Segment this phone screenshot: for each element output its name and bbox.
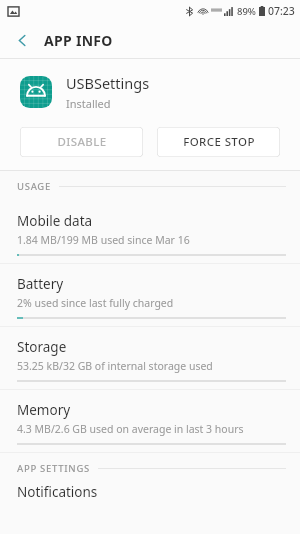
- staticText: APP INFO: [44, 31, 113, 50]
- button[interactable]: Mobile data: [0, 201, 300, 263]
- staticText: FORCE STOP: [183, 134, 255, 150]
- button[interactable]: Storage: [0, 327, 300, 389]
- button[interactable]: Battery: [0, 264, 300, 326]
- staticText: USBSettings: [66, 73, 150, 93]
- staticText: USAGE: [17, 180, 51, 193]
- staticText: 07:23: [268, 4, 295, 18]
- button[interactable]: Memory: [0, 390, 300, 452]
- staticText: DISABLE: [57, 134, 107, 150]
- staticText: Mobile data: [17, 212, 93, 230]
- button[interactable]: FORCE STOP: [157, 127, 280, 157]
- staticText: Notifications: [17, 483, 98, 501]
- staticText: 89%: [237, 5, 256, 18]
- staticText: Memory: [17, 401, 71, 419]
- staticText: 1.84 MB/199 MB used since Mar 16: [17, 233, 190, 247]
- staticText: 53.25 kB/32 GB of internal storage used: [17, 359, 213, 373]
- button[interactable]: DISABLE: [20, 127, 143, 157]
- staticText: 2% used since last fully charged: [17, 296, 174, 310]
- button[interactable]: Back: [10, 28, 34, 52]
- button[interactable]: Notifications: [0, 483, 300, 503]
- staticText: Installed: [66, 96, 111, 111]
- staticText: APP SETTINGS: [17, 462, 90, 475]
- staticText: Battery: [17, 275, 64, 293]
- staticText: Storage: [17, 338, 67, 356]
- staticText: 4.3 MB/2.6 GB used on average in last 3 …: [17, 422, 244, 436]
